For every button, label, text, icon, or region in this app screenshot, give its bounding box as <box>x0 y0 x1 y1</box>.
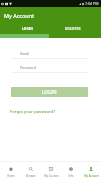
button[interactable]: My Account <box>81 165 101 180</box>
staticText: 7:04 PM <box>85 1 99 6</box>
button[interactable]: Home <box>0 165 21 180</box>
staticText: Password <box>20 65 36 70</box>
staticText: Email <box>20 51 29 56</box>
button[interactable]: Browse <box>21 165 41 180</box>
staticText: Forgot your password? <box>10 109 55 115</box>
button[interactable]: REGISTER <box>50 23 101 38</box>
staticText: Home <box>7 174 15 178</box>
button[interactable]: Forgot your password? <box>10 109 55 115</box>
staticText: My Account <box>4 12 35 19</box>
button[interactable]: LOGIN <box>11 87 88 97</box>
button[interactable]: LOGIN <box>0 23 50 38</box>
staticText: My Courses <box>44 174 59 178</box>
button[interactable]: My Courses <box>41 165 61 180</box>
staticText: Info <box>68 174 74 178</box>
staticText: LOGIN <box>42 89 57 95</box>
button[interactable]: Info <box>61 165 81 180</box>
staticText: My Account <box>84 174 99 178</box>
staticText: Browse <box>26 174 36 178</box>
staticText: LOGIN <box>22 27 33 31</box>
staticText: REGISTER <box>65 27 81 31</box>
